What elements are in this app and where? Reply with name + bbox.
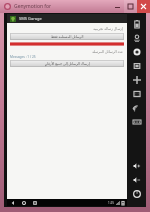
staticText: Messages : 1 / 25 — [10, 55, 124, 59]
button[interactable]: Home — [21, 200, 27, 206]
button[interactable]: Recents — [32, 200, 38, 206]
staticText: إرسال رسالة تجريبية — [10, 26, 123, 31]
staticText: SMS Garage — [19, 16, 42, 21]
staticText: إرسال الرسائل إلى جميع الأرقام — [45, 61, 90, 66]
button[interactable]: Screenshot — [127, 59, 146, 73]
button[interactable]: إرسال الرسائل إلى جميع الأرقام — [10, 60, 124, 67]
button[interactable]: D-pad — [127, 73, 146, 87]
staticText: 1:25 — [108, 201, 114, 205]
button[interactable]: Volume up — [127, 159, 146, 173]
button[interactable]: Phone — [127, 87, 146, 101]
button[interactable]: SMS Garage — [7, 14, 127, 23]
button[interactable]: الرسائل المستلمة فقط — [10, 33, 124, 40]
staticText: Genymotion for personal use - Custom Pho… — [14, 3, 62, 10]
button[interactable]: Power — [127, 187, 146, 201]
button[interactable]: Network — [127, 101, 146, 115]
button[interactable]: Camera — [127, 45, 146, 59]
button[interactable]: GPS — [127, 31, 146, 45]
staticText: عدد الرسائل المرسلة — [10, 49, 123, 54]
button[interactable]: Battery — [127, 17, 146, 31]
button[interactable]: Window button — [124, 0, 137, 13]
button[interactable]: Keyboard — [127, 115, 146, 129]
button[interactable]: Volume down — [127, 173, 146, 187]
button[interactable]: Back — [10, 200, 16, 206]
staticText: الرسائل المستلمة فقط — [51, 34, 84, 39]
button[interactable]: Window button — [111, 0, 124, 13]
button[interactable]: Window button — [137, 0, 150, 13]
